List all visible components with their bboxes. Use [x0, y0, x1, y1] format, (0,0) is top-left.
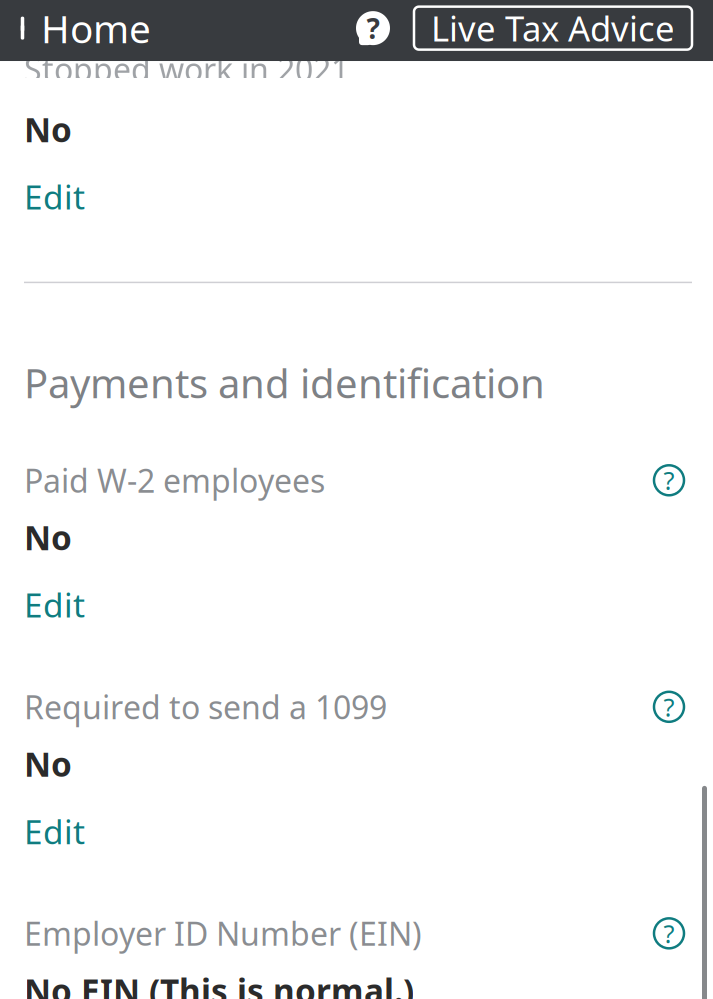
staticText: ? [663, 916, 674, 950]
button[interactable]: Live Tax Advice [414, 7, 692, 50]
staticText: ? [663, 690, 674, 724]
staticText: No [24, 107, 72, 151]
staticText: ? [366, 9, 379, 47]
button[interactable]: Help [646, 910, 692, 956]
staticText: Edit [24, 582, 85, 627]
staticText: Required to send a 1099 [24, 686, 387, 728]
button[interactable]: Edit [24, 576, 99, 633]
staticText: Paid W-2 employees [24, 459, 325, 501]
button[interactable]: Home [0, 0, 151, 60]
staticText: Live Tax Advice [431, 5, 675, 51]
staticText: No [24, 742, 72, 786]
button[interactable]: Help [348, 8, 398, 48]
staticText: Employer ID Number (EIN) [24, 912, 422, 955]
button[interactable]: Help [646, 684, 692, 730]
button[interactable]: Help [646, 457, 692, 503]
staticText: Home [41, 2, 151, 54]
staticText: No [24, 515, 72, 560]
button[interactable]: Edit [24, 168, 99, 225]
staticText: No EIN (This is normal.) [24, 968, 414, 999]
staticText: Stopped work in 2021 [24, 48, 349, 90]
staticText: Edit [24, 174, 85, 219]
button[interactable]: Edit [24, 803, 99, 859]
staticText: Payments and identification [24, 356, 545, 409]
staticText: Edit [24, 809, 85, 853]
staticText: ? [663, 463, 674, 497]
